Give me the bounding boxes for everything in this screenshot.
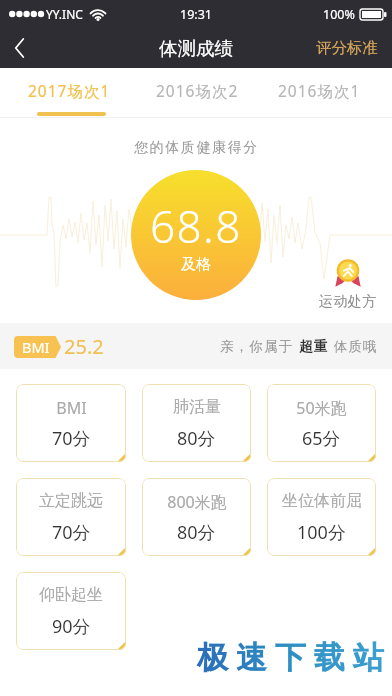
- staticText: 70分: [52, 426, 91, 451]
- button[interactable]: Back: [0, 28, 39, 68]
- staticText: 2016场次1: [278, 80, 361, 101]
- staticText: 评分标准: [316, 38, 378, 58]
- staticText: 65分: [302, 426, 341, 451]
- staticText: 极速下载站: [193, 638, 388, 677]
- staticText: BMI: [56, 397, 87, 419]
- button[interactable]: 坐位体前屈: [267, 478, 376, 556]
- button[interactable]: 立定跳远: [16, 478, 126, 556]
- staticText: 2016场次2: [156, 80, 239, 101]
- staticText: YY.INC: [46, 6, 83, 22]
- staticText: 100分: [297, 520, 346, 545]
- staticText: 及格: [181, 255, 211, 274]
- button[interactable]: 50米跑: [267, 384, 376, 462]
- staticText: 800米跑: [167, 491, 227, 513]
- staticText: 立定跳远: [39, 491, 103, 511]
- button[interactable]: 仰卧起坐: [16, 572, 126, 650]
- button[interactable]: 800米跑: [142, 478, 251, 556]
- staticText: 80分: [177, 426, 216, 451]
- button[interactable]: 2017场次1: [6, 68, 130, 118]
- staticText: 80分: [177, 520, 216, 545]
- button[interactable]: 2016场次1: [256, 68, 380, 118]
- staticText: 25.2: [64, 333, 104, 360]
- staticText: 68.8: [150, 196, 242, 256]
- staticText: 体测成绩: [159, 37, 233, 60]
- staticText: 19:31: [180, 6, 212, 23]
- staticText: 亲，你属于: [220, 337, 299, 355]
- staticText: 50米跑: [296, 397, 347, 419]
- button[interactable]: BMI: [16, 384, 126, 462]
- staticText: BMI: [22, 337, 50, 357]
- staticText: 仰卧起坐: [39, 585, 103, 605]
- button[interactable]: 运动处方: [316, 258, 380, 311]
- button[interactable]: 68.8: [131, 170, 261, 300]
- button[interactable]: 评分标准: [302, 28, 392, 68]
- button[interactable]: 2016场次2: [134, 68, 258, 118]
- staticText: 90分: [52, 614, 91, 639]
- staticText: 您的体质健康得分: [134, 139, 259, 157]
- button[interactable]: 肺活量: [142, 384, 251, 462]
- staticText: 运动处方: [319, 293, 377, 311]
- staticText: 超重: [299, 338, 329, 355]
- staticText: 体质哦: [329, 337, 378, 355]
- staticText: 100%: [323, 6, 355, 23]
- staticText: 坐位体前屈: [282, 491, 362, 511]
- staticText: 2017场次1: [28, 80, 111, 101]
- staticText: 肺活量: [173, 397, 221, 417]
- staticText: 70分: [52, 520, 91, 545]
